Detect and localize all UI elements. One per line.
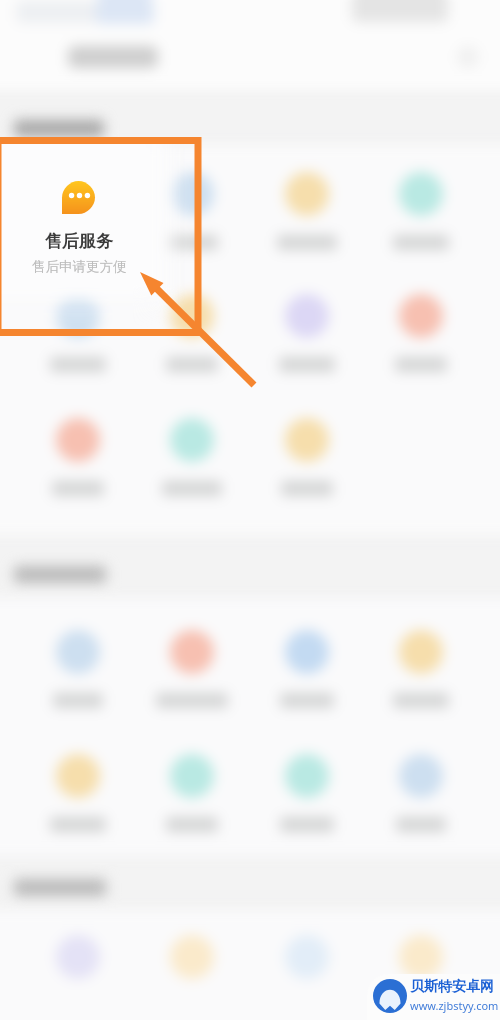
staticText: 售后服务 <box>45 231 113 252</box>
staticText: www.zjbstyy.com <box>410 998 499 1013</box>
other: 售后服务 <box>62 181 95 214</box>
staticText: 贝斯特安卓网 <box>410 978 494 996</box>
other: Logo <box>373 979 407 1013</box>
button[interactable]: 售后服务 <box>0 144 195 328</box>
staticText: 售后申请更方便 <box>32 258 127 275</box>
